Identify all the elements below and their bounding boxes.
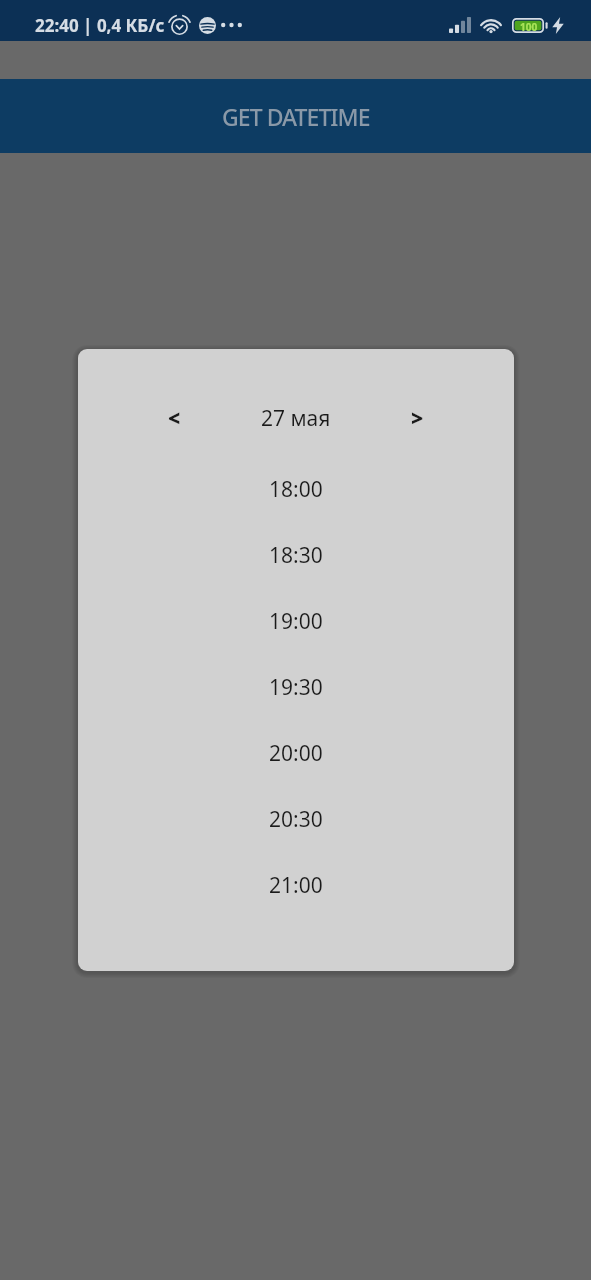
staticText: GET DATETIME bbox=[222, 101, 370, 132]
staticText: 27 мая bbox=[261, 404, 331, 433]
staticText: 20:30 bbox=[269, 805, 323, 834]
button[interactable]: 19:00 bbox=[78, 588, 514, 654]
staticText: > bbox=[411, 404, 424, 433]
button[interactable]: 21:00 bbox=[78, 852, 514, 918]
button[interactable]: 20:30 bbox=[78, 786, 514, 852]
button[interactable]: GET DATETIME bbox=[0, 79, 591, 153]
staticText: < bbox=[168, 404, 181, 433]
button[interactable]: 20:00 bbox=[78, 720, 514, 786]
button[interactable]: 18:30 bbox=[78, 522, 514, 588]
button[interactable]: 19:30 bbox=[78, 654, 514, 720]
staticText: 18:30 bbox=[269, 541, 323, 570]
staticText: 100 bbox=[520, 20, 538, 34]
staticText: 20:00 bbox=[269, 739, 323, 768]
staticText: 21:00 bbox=[269, 871, 323, 900]
staticText: 18:00 bbox=[269, 475, 323, 504]
staticText: 22:40 | 0,4 КБ/c bbox=[35, 14, 165, 37]
button[interactable]: Previous day bbox=[78, 396, 220, 440]
staticText: 19:30 bbox=[269, 673, 323, 702]
staticText: 19:00 bbox=[269, 607, 323, 636]
button[interactable]: Next day bbox=[372, 396, 514, 440]
button[interactable]: 18:00 bbox=[78, 456, 514, 522]
